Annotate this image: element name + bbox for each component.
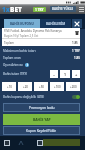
button[interactable]: Increase [72, 70, 80, 78]
button[interactable]: Delete [73, 28, 80, 38]
button[interactable]: +20 [18, 82, 32, 91]
staticText: +50 [39, 85, 44, 89]
staticText: BAHİS YAP [33, 117, 51, 122]
button[interactable]: Menu [78, 6, 84, 12]
button[interactable]: Oyun Artırıcısı [3, 62, 80, 67]
staticText: Oyun Artırıcısı [3, 63, 23, 67]
button[interactable]: BAKİYE YÜKLE [50, 6, 76, 12]
button[interactable]: Home [17, 139, 24, 146]
staticText: Bahis kuponu değişiklik (ATB) [3, 95, 45, 99]
staticText: Toplam oran [3, 56, 21, 60]
staticText: Kupon Kaydet/Yükle [26, 129, 57, 133]
staticText: Maksimum bahis tutarı [3, 49, 36, 53]
staticText: +200 [70, 85, 77, 89]
staticText: BAHİS KUPONU [10, 22, 34, 26]
staticText: Bahis tutarı (TRY) [3, 72, 28, 76]
button[interactable]: Close [72, 19, 82, 28]
staticText: 1 TRY [72, 49, 80, 53]
staticText: 1 TRY [35, 8, 44, 12]
button[interactable]: BAHİSLERİM [40, 19, 71, 28]
staticText: BET [10, 5, 22, 14]
staticText: +20 [23, 85, 28, 89]
button[interactable]: +100 [50, 82, 64, 91]
button[interactable]: 1x [2, 5, 22, 14]
staticText: Promosyon kodu [29, 106, 55, 110]
staticText: Bugün 9 Eyl Toplam 2,5 Üst [4, 34, 39, 38]
staticText: Toplam [4, 41, 15, 45]
button[interactable]: BAHİS YAP [3, 114, 80, 125]
staticText: i [27, 63, 28, 67]
button[interactable]: Back [3, 139, 10, 146]
button[interactable]: Decrease [50, 70, 58, 78]
button[interactable]: 1 TRY [33, 7, 46, 12]
staticText: +100 [54, 85, 61, 89]
staticText: – [53, 72, 55, 77]
button[interactable]: +50 [34, 82, 48, 91]
button[interactable]: +200 [66, 82, 80, 91]
staticText: BAHİSLERİM [46, 22, 66, 26]
staticText: + [75, 72, 78, 77]
button[interactable]: Promosyon kodu [3, 103, 80, 112]
staticText: +10 [7, 85, 12, 89]
staticText: 1.85 [72, 41, 78, 45]
button[interactable]: +10 [2, 82, 16, 91]
staticText: BAKİYE YÜKLE [52, 7, 74, 11]
staticText: FİVE Futbol. Anadolu Dynamo Fbk Kanarya [4, 29, 62, 33]
button[interactable]: Recents [36, 139, 43, 146]
staticText: 1 [64, 72, 66, 77]
staticText: 1x [2, 5, 10, 14]
button[interactable]: Kupon Kaydet/Yükle [3, 126, 80, 135]
staticText: 1.85 [74, 56, 80, 60]
button[interactable]: BAHİS KUPONU [4, 19, 40, 28]
button[interactable]: Bahis kuponu değişiklik (ATB) [3, 92, 80, 101]
button[interactable]: 1 [60, 70, 70, 78]
